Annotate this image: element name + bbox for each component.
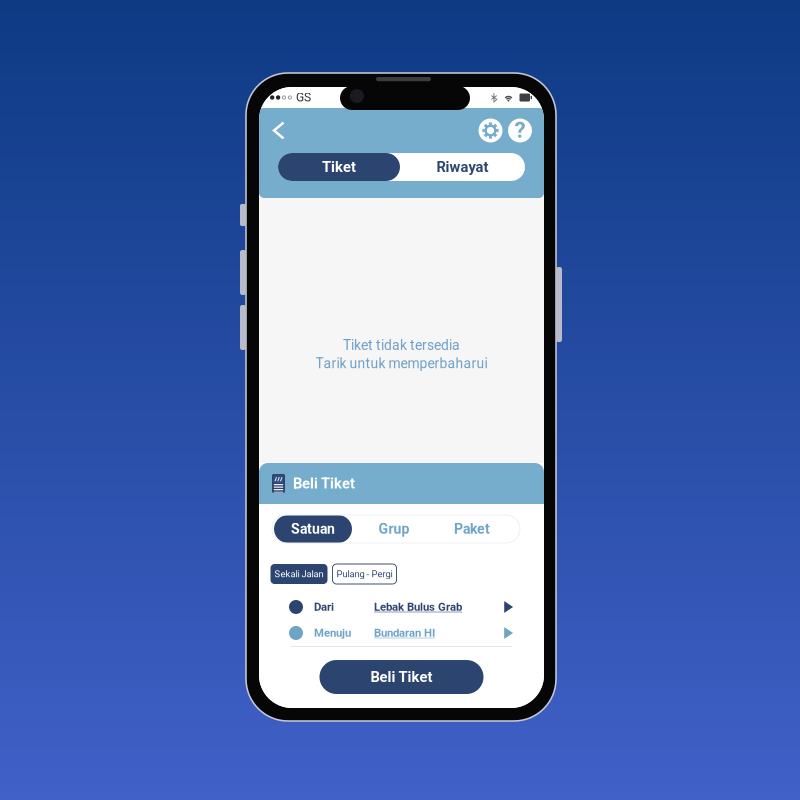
- staticText: Tiket: [322, 158, 356, 176]
- button[interactable]: Help: [508, 115, 532, 146]
- button[interactable]: Back: [266, 115, 292, 146]
- button[interactable]: Grup: [352, 515, 436, 543]
- staticText: Satuan: [291, 521, 335, 537]
- button[interactable]: Menuju: [289, 620, 514, 646]
- staticText: Beli Tiket: [293, 475, 355, 492]
- button[interactable]: Tiket: [278, 153, 400, 181]
- button[interactable]: Dari: [289, 594, 514, 620]
- staticText: GS: [296, 90, 311, 105]
- button[interactable]: Pulang - Pergi: [332, 564, 396, 584]
- staticText: Dari: [314, 600, 334, 614]
- staticText: Paket: [454, 521, 490, 537]
- button[interactable]: Beli Tiket: [319, 660, 483, 694]
- button[interactable]: Riwayat: [400, 153, 525, 181]
- staticText: Riwayat: [436, 158, 488, 176]
- button[interactable]: Satuan: [274, 515, 352, 543]
- staticText: Grup: [378, 521, 409, 537]
- staticText: Pulang - Pergi: [336, 568, 392, 579]
- button[interactable]: Settings: [478, 115, 502, 146]
- staticText: ?: [514, 117, 525, 143]
- staticText: Beli Tiket: [370, 668, 432, 686]
- staticText: Sekali Jalan: [274, 568, 323, 579]
- staticText: Tiket tidak tersedia: [343, 337, 460, 353]
- staticText: Bundaran HI: [374, 626, 435, 640]
- button[interactable]: Sekali Jalan: [270, 564, 327, 584]
- staticText: Tarik untuk memperbaharui: [315, 355, 487, 372]
- staticText: Lebak Bulus Grab: [374, 600, 462, 614]
- staticText: Menuju: [314, 626, 351, 640]
- button[interactable]: Paket: [436, 515, 508, 543]
